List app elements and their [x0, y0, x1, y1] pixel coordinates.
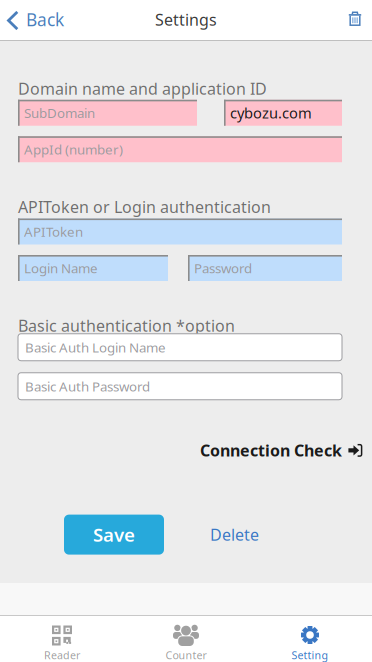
staticText: Counter — [165, 648, 206, 662]
staticText: Save — [93, 522, 135, 547]
staticText: Delete — [210, 524, 259, 545]
button[interactable]: Delete — [336, 3, 372, 38]
staticText: APIToken or Login authentication — [18, 196, 271, 217]
staticText: Setting — [291, 648, 328, 662]
button[interactable]: Save — [64, 515, 164, 555]
staticText: Connection Check — [200, 440, 342, 461]
staticText: APIToken — [24, 223, 83, 240]
staticText: Domain name and application ID — [18, 78, 267, 99]
staticText: Back — [26, 8, 64, 31]
button[interactable]: Reader — [0, 616, 124, 662]
staticText: Basic Auth Password — [25, 377, 150, 395]
staticText: AppId (number) — [24, 140, 123, 158]
staticText: Login Name — [24, 259, 98, 277]
staticText: cybozu.com — [230, 103, 312, 122]
button[interactable]: Connection Check — [200, 440, 363, 461]
button[interactable]: Counter — [124, 616, 248, 662]
staticText: SubDomain — [24, 104, 95, 122]
button[interactable]: Back — [0, 0, 74, 41]
staticText: Reader — [44, 648, 80, 662]
staticText: Password — [194, 259, 252, 277]
button[interactable]: Delete — [198, 512, 271, 557]
button[interactable]: Setting — [248, 616, 372, 662]
staticText: Settings — [155, 9, 217, 30]
staticText: Basic Auth Login Name — [25, 338, 166, 356]
staticText: Basic authentication *option — [18, 315, 235, 336]
